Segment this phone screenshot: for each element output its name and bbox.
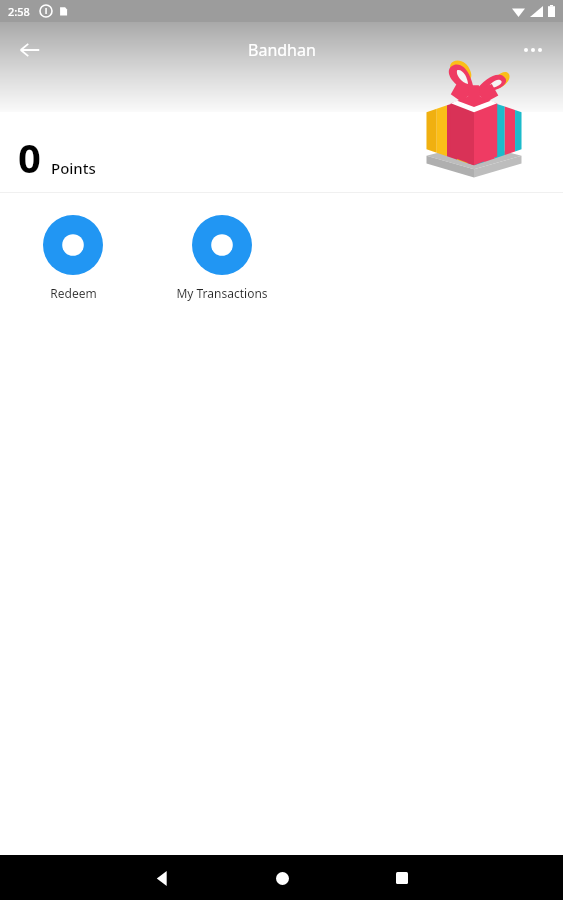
button[interactable]: Home [260,856,304,900]
staticText: My Transactions [176,285,268,301]
staticText: 0 [18,130,41,184]
staticText: 2:58 [8,4,30,19]
button[interactable]: More options [509,26,557,74]
staticText: Redeem [50,285,97,301]
button[interactable]: Back [6,26,54,74]
staticText: Points [51,158,96,178]
button[interactable]: My Transactions [162,211,282,305]
button[interactable]: Redeem [24,211,122,305]
button[interactable]: Back [140,856,184,900]
button[interactable]: Recent apps [380,856,424,900]
staticText: Bandhan [248,39,316,61]
